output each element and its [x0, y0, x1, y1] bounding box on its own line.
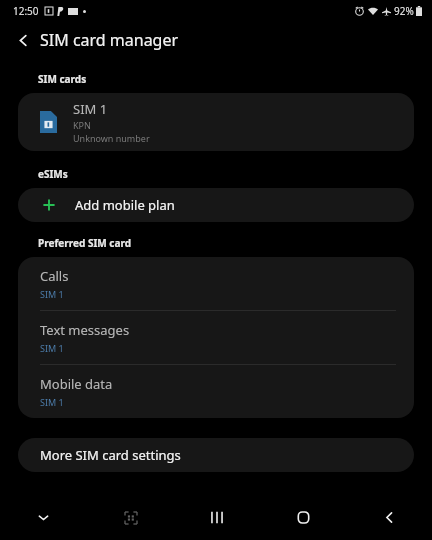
staticText: Text messages: [40, 321, 130, 339]
staticText: KPN: [73, 119, 91, 131]
button[interactable]: Calls: [18, 257, 414, 310]
staticText: SIM 1: [40, 396, 64, 408]
button[interactable]: More SIM card settings: [18, 438, 414, 472]
button[interactable]: Recent apps: [174, 495, 260, 540]
button[interactable]: Hide keyboard: [0, 495, 87, 540]
button[interactable]: Home: [260, 495, 346, 540]
staticText: 12:50: [13, 4, 39, 18]
button[interactable]: Add mobile plan: [18, 188, 414, 222]
staticText: SIM 1: [40, 342, 64, 354]
staticText: Add mobile plan: [75, 196, 175, 214]
button[interactable]: Switch keyboard: [87, 495, 174, 540]
staticText: SIM 1: [40, 288, 64, 300]
staticText: 92%: [394, 4, 414, 18]
staticText: eSIMs: [38, 167, 68, 181]
staticText: SIM cards: [38, 72, 87, 86]
button[interactable]: Text messages: [18, 311, 414, 364]
button[interactable]: Mobile data: [18, 365, 414, 418]
staticText: SIM card manager: [40, 29, 179, 51]
button[interactable]: Back: [346, 495, 432, 540]
staticText: Unknown number: [73, 132, 150, 144]
button[interactable]: SIM 1: [18, 93, 414, 151]
staticText: Preferred SIM card: [38, 236, 132, 250]
staticText: More SIM card settings: [40, 446, 181, 464]
staticText: Calls: [40, 267, 69, 285]
staticText: Mobile data: [40, 375, 113, 393]
staticText: SIM 1: [73, 100, 108, 118]
button[interactable]: Back: [8, 25, 38, 55]
